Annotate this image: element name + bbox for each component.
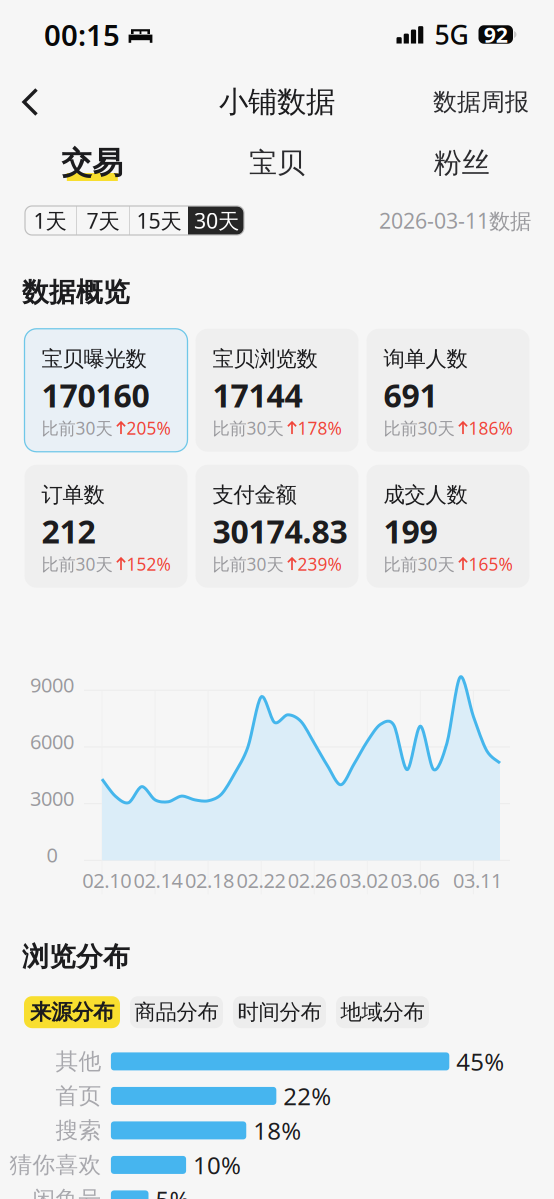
staticText: 比前30天 <box>212 416 283 439</box>
button[interactable]: Back <box>0 81 55 122</box>
button[interactable]: 宝贝 <box>185 135 369 191</box>
staticText: 691 <box>383 374 437 416</box>
staticText: 92 <box>484 20 508 49</box>
staticText: 03.02 <box>339 867 388 893</box>
staticText: 02.22 <box>236 867 285 893</box>
staticText: 成交人数 <box>383 482 467 508</box>
staticText: 9000 <box>30 671 74 698</box>
staticText: 搜索 <box>55 1116 101 1144</box>
button[interactable]: 数据周报 <box>433 79 554 125</box>
staticText: 猜你喜欢 <box>9 1151 101 1179</box>
button[interactable]: 地域分布 <box>336 996 429 1028</box>
staticText: 1天 <box>33 206 66 235</box>
button[interactable]: 宝贝曝光数 <box>24 329 187 452</box>
staticText: 闲鱼号 <box>32 1185 101 1199</box>
staticText: 数据概览 <box>22 276 130 309</box>
staticText: 小铺数据 <box>219 84 335 120</box>
staticText: 00:15 <box>44 15 120 54</box>
staticText: 178% <box>297 416 341 439</box>
staticText: 22% <box>283 1080 331 1112</box>
button[interactable]: 来源分布 <box>24 996 120 1028</box>
staticText: 45% <box>456 1045 504 1077</box>
staticText: 订单数 <box>41 482 104 508</box>
staticText: 152% <box>126 552 170 575</box>
button[interactable]: 1天 <box>24 206 76 235</box>
staticText: 03.06 <box>391 867 440 893</box>
staticText: 宝贝 <box>249 146 305 180</box>
staticText: 10% <box>193 1149 241 1181</box>
staticText: 165% <box>468 552 512 575</box>
staticText: 5% <box>155 1183 189 1199</box>
staticText: 宝贝浏览数 <box>212 346 317 372</box>
staticText: 186% <box>468 416 512 439</box>
staticText: 7天 <box>86 206 119 235</box>
staticText: 212 <box>41 510 95 552</box>
staticText: 205% <box>126 416 170 439</box>
staticText: 来源分布 <box>30 999 114 1025</box>
staticText: 首页 <box>55 1082 101 1110</box>
button[interactable]: 支付金额 <box>195 465 358 588</box>
button[interactable]: 粉丝 <box>369 135 554 191</box>
staticText: 18% <box>253 1114 301 1146</box>
button[interactable]: 时间分布 <box>233 996 326 1028</box>
staticText: 02.10 <box>82 867 131 893</box>
staticText: 粉丝 <box>434 146 490 180</box>
staticText: 支付金额 <box>212 482 296 508</box>
staticText: 数据周报 <box>433 87 529 117</box>
staticText: 6000 <box>30 728 74 755</box>
staticText: 03.11 <box>453 867 502 893</box>
staticText: 02.26 <box>288 867 337 893</box>
staticText: 商品分布 <box>134 999 218 1025</box>
staticText: 30天 <box>194 206 239 235</box>
staticText: 3000 <box>30 785 74 811</box>
staticText: 0 <box>46 842 57 868</box>
button[interactable]: 商品分布 <box>130 996 223 1028</box>
button[interactable]: 订单数 <box>24 465 187 588</box>
staticText: 其他 <box>55 1047 101 1075</box>
staticText: 比前30天 <box>41 416 112 439</box>
staticText: 比前30天 <box>212 552 283 575</box>
staticText: 239% <box>297 552 341 575</box>
staticText: 比前30天 <box>383 416 454 439</box>
button[interactable]: 30天 <box>188 206 245 235</box>
staticText: 浏览分布 <box>22 940 130 973</box>
button[interactable]: 7天 <box>77 206 129 235</box>
staticText: 宝贝曝光数 <box>41 346 146 372</box>
button[interactable]: 宝贝浏览数 <box>195 329 358 452</box>
button[interactable]: 询单人数 <box>366 329 529 452</box>
staticText: 199 <box>383 510 437 552</box>
staticText: 30174.83 <box>212 510 347 552</box>
staticText: 02.18 <box>185 867 234 893</box>
staticText: 询单人数 <box>383 346 467 372</box>
staticText: 02.14 <box>134 867 183 893</box>
staticText: 地域分布 <box>340 999 424 1025</box>
button[interactable]: 15天 <box>130 206 188 235</box>
staticText: 比前30天 <box>383 552 454 575</box>
staticText: 2026-03-11数据 <box>379 206 531 235</box>
staticText: 170160 <box>41 374 149 416</box>
staticText: 5G <box>434 17 468 52</box>
staticText: 交易 <box>61 144 123 182</box>
staticText: 17144 <box>212 374 302 416</box>
button[interactable]: 成交人数 <box>366 465 529 588</box>
staticText: 时间分布 <box>237 999 321 1025</box>
staticText: 15天 <box>136 206 181 235</box>
button[interactable]: 交易 <box>0 135 185 191</box>
staticText: 比前30天 <box>41 552 112 575</box>
